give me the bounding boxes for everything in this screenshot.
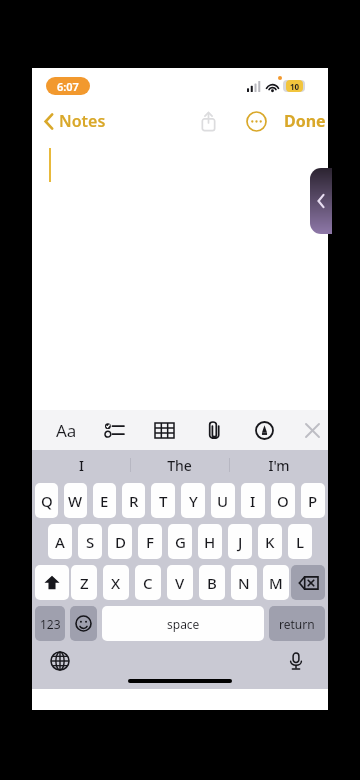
button[interactable]: Markup [250,416,278,444]
staticText: 123 [40,616,61,632]
button[interactable]: E [93,483,116,518]
button[interactable]: W [64,483,87,518]
button[interactable]: A [48,524,72,559]
button[interactable]: More options [238,104,274,138]
button[interactable]: Y [181,483,205,518]
button[interactable]: 123 [35,606,65,641]
button[interactable]: Done [276,104,334,138]
button[interactable]: K [258,524,282,559]
button[interactable]: Text format [52,416,80,444]
button[interactable]: I'm [229,450,328,480]
button[interactable]: V [167,565,193,600]
button[interactable]: H [198,524,222,559]
button[interactable]: Dictation [284,649,308,673]
button[interactable]: Notes [38,104,112,138]
button[interactable]: P [301,483,325,518]
button[interactable]: return [269,606,325,641]
button[interactable]: L [288,524,312,559]
button[interactable]: Close [298,416,326,444]
button[interactable]: Delete [291,565,325,600]
staticText: I'm [268,456,290,475]
staticText: V [175,573,185,593]
button[interactable]: C [135,565,161,600]
button[interactable]: I [241,483,265,518]
button[interactable]: Expand panel [310,168,332,234]
staticText: O [277,491,289,511]
button[interactable]: Q [35,483,58,518]
staticText: Aa [56,419,77,442]
staticText: F [146,532,154,552]
staticText: D [115,532,126,552]
staticText: The [167,456,192,475]
staticText: Notes [59,110,106,132]
staticText: I [79,456,84,475]
button[interactable]: Checklist [100,416,128,444]
staticText: I [250,491,256,511]
button[interactable]: T [151,483,175,518]
staticText: U [217,491,229,511]
staticText: A [55,532,65,552]
staticText: Z [80,573,89,593]
button[interactable]: J [228,524,252,559]
button[interactable]: M [263,565,289,600]
staticText: L [296,532,305,552]
button[interactable]: Shift [35,565,69,600]
button[interactable]: Emoji [70,606,97,641]
button[interactable]: D [108,524,132,559]
staticText: E [100,491,109,511]
staticText: Y [189,491,198,511]
staticText: K [265,532,275,552]
staticText: C [143,573,153,593]
staticText: Done [284,110,326,132]
button[interactable]: The [130,450,229,480]
staticText: M [269,573,283,593]
button[interactable]: U [211,483,235,518]
button[interactable]: O [271,483,295,518]
button[interactable]: G [168,524,192,559]
button[interactable]: Z [71,565,97,600]
button[interactable]: X [103,565,129,600]
staticText: X [111,573,121,593]
staticText: N [238,573,250,593]
button[interactable]: space [102,606,264,641]
staticText: J [238,532,243,552]
staticText: H [204,532,216,552]
staticText: Q [41,491,53,511]
staticText: G [175,532,186,552]
staticText: 6:07 [57,79,79,94]
staticText: T [159,491,168,511]
button[interactable]: S [78,524,102,559]
button[interactable]: Attach [200,416,228,444]
staticText: W [68,491,83,511]
staticText: S [86,532,95,552]
staticText: return [279,616,315,632]
staticText: B [207,573,217,593]
staticText: 10 [290,81,300,92]
button[interactable]: N [231,565,257,600]
staticText: P [308,491,318,511]
button[interactable]: Languages [48,649,72,673]
button[interactable]: B [199,565,225,600]
staticText: space [167,616,200,632]
button[interactable]: Table [150,416,178,444]
button[interactable]: I [32,450,130,480]
button[interactable]: Share [190,104,226,138]
button[interactable]: R [122,483,145,518]
staticText: R [129,491,139,511]
button[interactable]: F [138,524,162,559]
